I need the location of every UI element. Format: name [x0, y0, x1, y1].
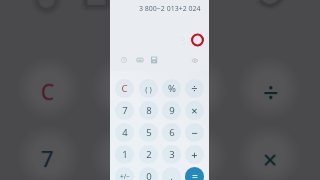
- staticText: ( ): [145, 84, 152, 94]
- button[interactable]: Minus: [185, 123, 204, 142]
- staticText: 7: [122, 104, 128, 117]
- button[interactable]: Plus: [185, 145, 204, 164]
- staticText: 2: [146, 148, 152, 161]
- staticText: ÷: [263, 73, 279, 110]
- staticText: .: [170, 170, 173, 180]
- button[interactable]: 9: [162, 101, 181, 120]
- button[interactable]: 7: [115, 101, 134, 120]
- staticText: ×: [263, 142, 278, 176]
- staticText: ×: [263, 142, 278, 176]
- button[interactable]: 8: [139, 101, 158, 120]
- button[interactable]: Multiply: [185, 101, 204, 120]
- staticText: −: [191, 125, 198, 140]
- staticText: C: [41, 79, 55, 108]
- staticText: 7: [42, 143, 55, 173]
- staticText: 3: [169, 148, 175, 161]
- button[interactable]: Decimal point: [162, 167, 181, 180]
- staticText: ×: [191, 103, 198, 118]
- staticText: ÷: [191, 81, 198, 96]
- button[interactable]: 6: [162, 123, 181, 142]
- staticText: C: [121, 82, 128, 95]
- button[interactable]: Equals: [185, 167, 204, 180]
- staticText: +/−: [120, 172, 130, 180]
- button[interactable]: Percent: [162, 79, 181, 98]
- button[interactable]: 1: [115, 145, 134, 164]
- button[interactable]: Clear: [115, 79, 134, 98]
- staticText: ×: [262, 142, 277, 176]
- button[interactable]: 0: [139, 167, 158, 180]
- staticText: C: [41, 78, 55, 107]
- staticText: ×: [263, 143, 278, 177]
- staticText: ÷: [263, 73, 279, 110]
- staticText: 8: [146, 104, 152, 117]
- staticText: =: [192, 170, 198, 180]
- staticText: 3 811: [180, 34, 206, 48]
- button[interactable]: Parentheses: [139, 79, 158, 98]
- staticText: 3 800−2 013+2 024: [139, 4, 201, 14]
- staticText: %: [168, 82, 176, 95]
- staticText: +: [191, 147, 198, 162]
- staticText: C: [40, 78, 54, 107]
- staticText: 7: [41, 144, 54, 174]
- staticText: 0: [146, 170, 152, 180]
- button[interactable]: 3: [162, 145, 181, 164]
- staticText: ÷: [263, 74, 279, 111]
- staticText: 7: [41, 143, 54, 173]
- button[interactable]: Plus minus: [115, 167, 134, 180]
- staticText: C: [41, 77, 55, 106]
- staticText: 4: [122, 126, 128, 139]
- button[interactable]: Divide: [185, 79, 204, 98]
- staticText: 9: [169, 104, 175, 117]
- staticText: C: [41, 78, 55, 107]
- staticText: 6: [169, 126, 175, 139]
- staticText: 7: [40, 143, 53, 173]
- button[interactable]: 5: [139, 123, 158, 142]
- staticText: 7: [41, 143, 54, 173]
- button[interactable]: 4: [115, 123, 134, 142]
- button[interactable]: 2: [139, 145, 158, 164]
- staticText: ÷: [263, 73, 279, 110]
- staticText: ÷: [264, 73, 280, 110]
- staticText: ×: [264, 142, 279, 176]
- staticText: 1: [122, 148, 128, 161]
- staticText: 5: [146, 126, 152, 139]
